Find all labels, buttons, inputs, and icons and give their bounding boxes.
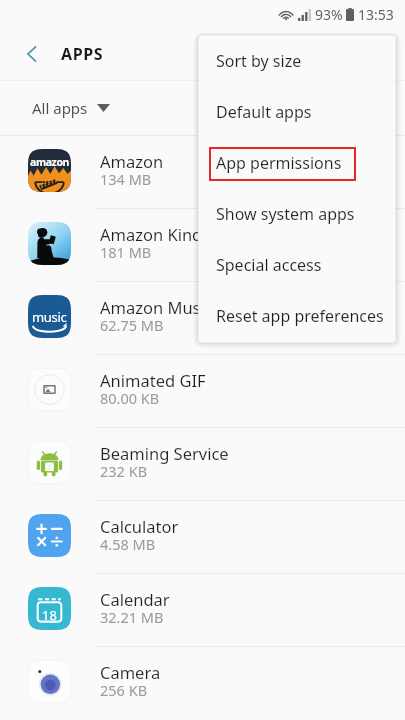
staticText: Beaming Service xyxy=(100,442,229,464)
button[interactable]: Special access xyxy=(198,239,396,290)
staticText: Amazon xyxy=(100,150,164,172)
button[interactable]: amazon xyxy=(0,136,405,208)
staticText: All apps xyxy=(32,98,88,118)
staticText: music xyxy=(32,308,67,326)
staticText: 4.58 MB xyxy=(100,534,156,554)
staticText: 93% xyxy=(315,5,343,24)
staticText: Camera xyxy=(100,661,161,683)
button[interactable]: Sort by size xyxy=(198,35,396,86)
button[interactable]: 18 xyxy=(0,574,405,646)
button[interactable]: Animated GIF xyxy=(0,355,405,427)
button[interactable]: App permissions xyxy=(198,137,396,188)
staticText: 32.21 MB xyxy=(100,607,164,627)
button[interactable]: Reset app preferences xyxy=(198,290,396,341)
staticText: APPS xyxy=(61,43,104,65)
button[interactable]: Amazon Kindle xyxy=(0,209,405,281)
staticText: 134 MB xyxy=(100,169,152,189)
staticText: Animated GIF xyxy=(100,369,206,391)
staticText: Sort by size xyxy=(216,50,302,72)
staticText: Calculator xyxy=(100,515,179,537)
button[interactable]: music xyxy=(0,282,405,354)
staticText: 80.00 KB xyxy=(100,388,160,408)
staticText: 181 MB xyxy=(100,242,152,262)
button[interactable]: All apps xyxy=(0,81,405,135)
staticText: 18 xyxy=(42,606,57,624)
staticText: Amazon Music xyxy=(100,296,213,318)
button[interactable]: Navigate up xyxy=(10,32,54,76)
staticText: Special access xyxy=(216,254,322,276)
button[interactable]: Default apps xyxy=(198,86,396,137)
staticText: Show system apps xyxy=(216,203,355,225)
staticText: Reset app preferences xyxy=(216,305,384,327)
staticText: Amazon Kindle xyxy=(100,223,216,245)
button[interactable]: Camera xyxy=(0,647,405,719)
staticText: 13:53 xyxy=(358,5,394,24)
staticText: Default apps xyxy=(216,101,312,123)
staticText: 256 KB xyxy=(100,680,148,700)
staticText: App permissions xyxy=(216,152,342,174)
button[interactable]: Beaming Service xyxy=(0,428,405,500)
staticText: 232 KB xyxy=(100,461,148,481)
button[interactable]: Calculator xyxy=(0,501,405,573)
staticText: 62.75 MB xyxy=(100,315,164,335)
staticText: amazon xyxy=(30,155,69,169)
button[interactable]: Show system apps xyxy=(198,188,396,239)
staticText: Calendar xyxy=(100,588,170,610)
